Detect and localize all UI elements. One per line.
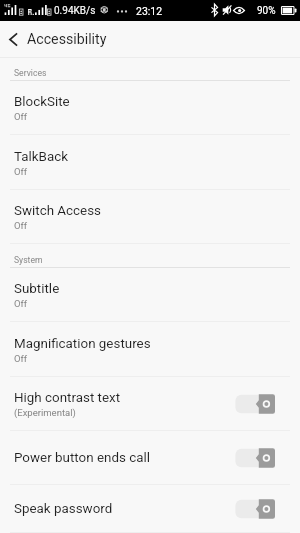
staticText: Switch Access bbox=[14, 203, 102, 219]
staticText: 0.94KB/s bbox=[54, 5, 96, 17]
staticText: High contrast text bbox=[14, 390, 121, 406]
button[interactable]: Toggle off bbox=[235, 448, 275, 468]
staticText: 90% bbox=[257, 5, 276, 17]
button[interactable]: TalkBack bbox=[0, 135, 300, 190]
staticText: Off bbox=[14, 220, 28, 231]
staticText: Power button ends call bbox=[14, 450, 150, 466]
staticText: Off bbox=[14, 166, 28, 177]
button[interactable]: Back bbox=[0, 21, 27, 58]
button[interactable]: High contrast text bbox=[0, 377, 300, 431]
staticText: Services bbox=[14, 68, 47, 78]
staticText: (Experimental) bbox=[14, 407, 76, 418]
button[interactable]: Power button ends call bbox=[0, 431, 300, 485]
staticText: Subtitle bbox=[14, 281, 60, 297]
staticText: Speak password bbox=[14, 501, 113, 517]
button[interactable]: BlockSite bbox=[0, 81, 300, 135]
button[interactable]: Magnification gestures bbox=[0, 322, 300, 377]
button[interactable]: Subtitle bbox=[0, 268, 300, 322]
staticText: TalkBack bbox=[14, 149, 69, 165]
button[interactable]: Toggle off bbox=[235, 499, 275, 519]
staticText: Off bbox=[14, 353, 28, 364]
staticText: BlockSite bbox=[14, 94, 70, 110]
staticText: System bbox=[14, 255, 43, 265]
button[interactable]: Speak password bbox=[0, 485, 300, 533]
staticText: 23:12 bbox=[136, 5, 163, 17]
staticText: Off bbox=[14, 298, 28, 309]
staticText: Accessibility bbox=[27, 31, 107, 48]
staticText: Off bbox=[14, 111, 28, 122]
button[interactable]: Toggle off bbox=[235, 394, 275, 414]
staticText: Magnification gestures bbox=[14, 336, 151, 352]
button[interactable]: Switch Access bbox=[0, 190, 300, 244]
